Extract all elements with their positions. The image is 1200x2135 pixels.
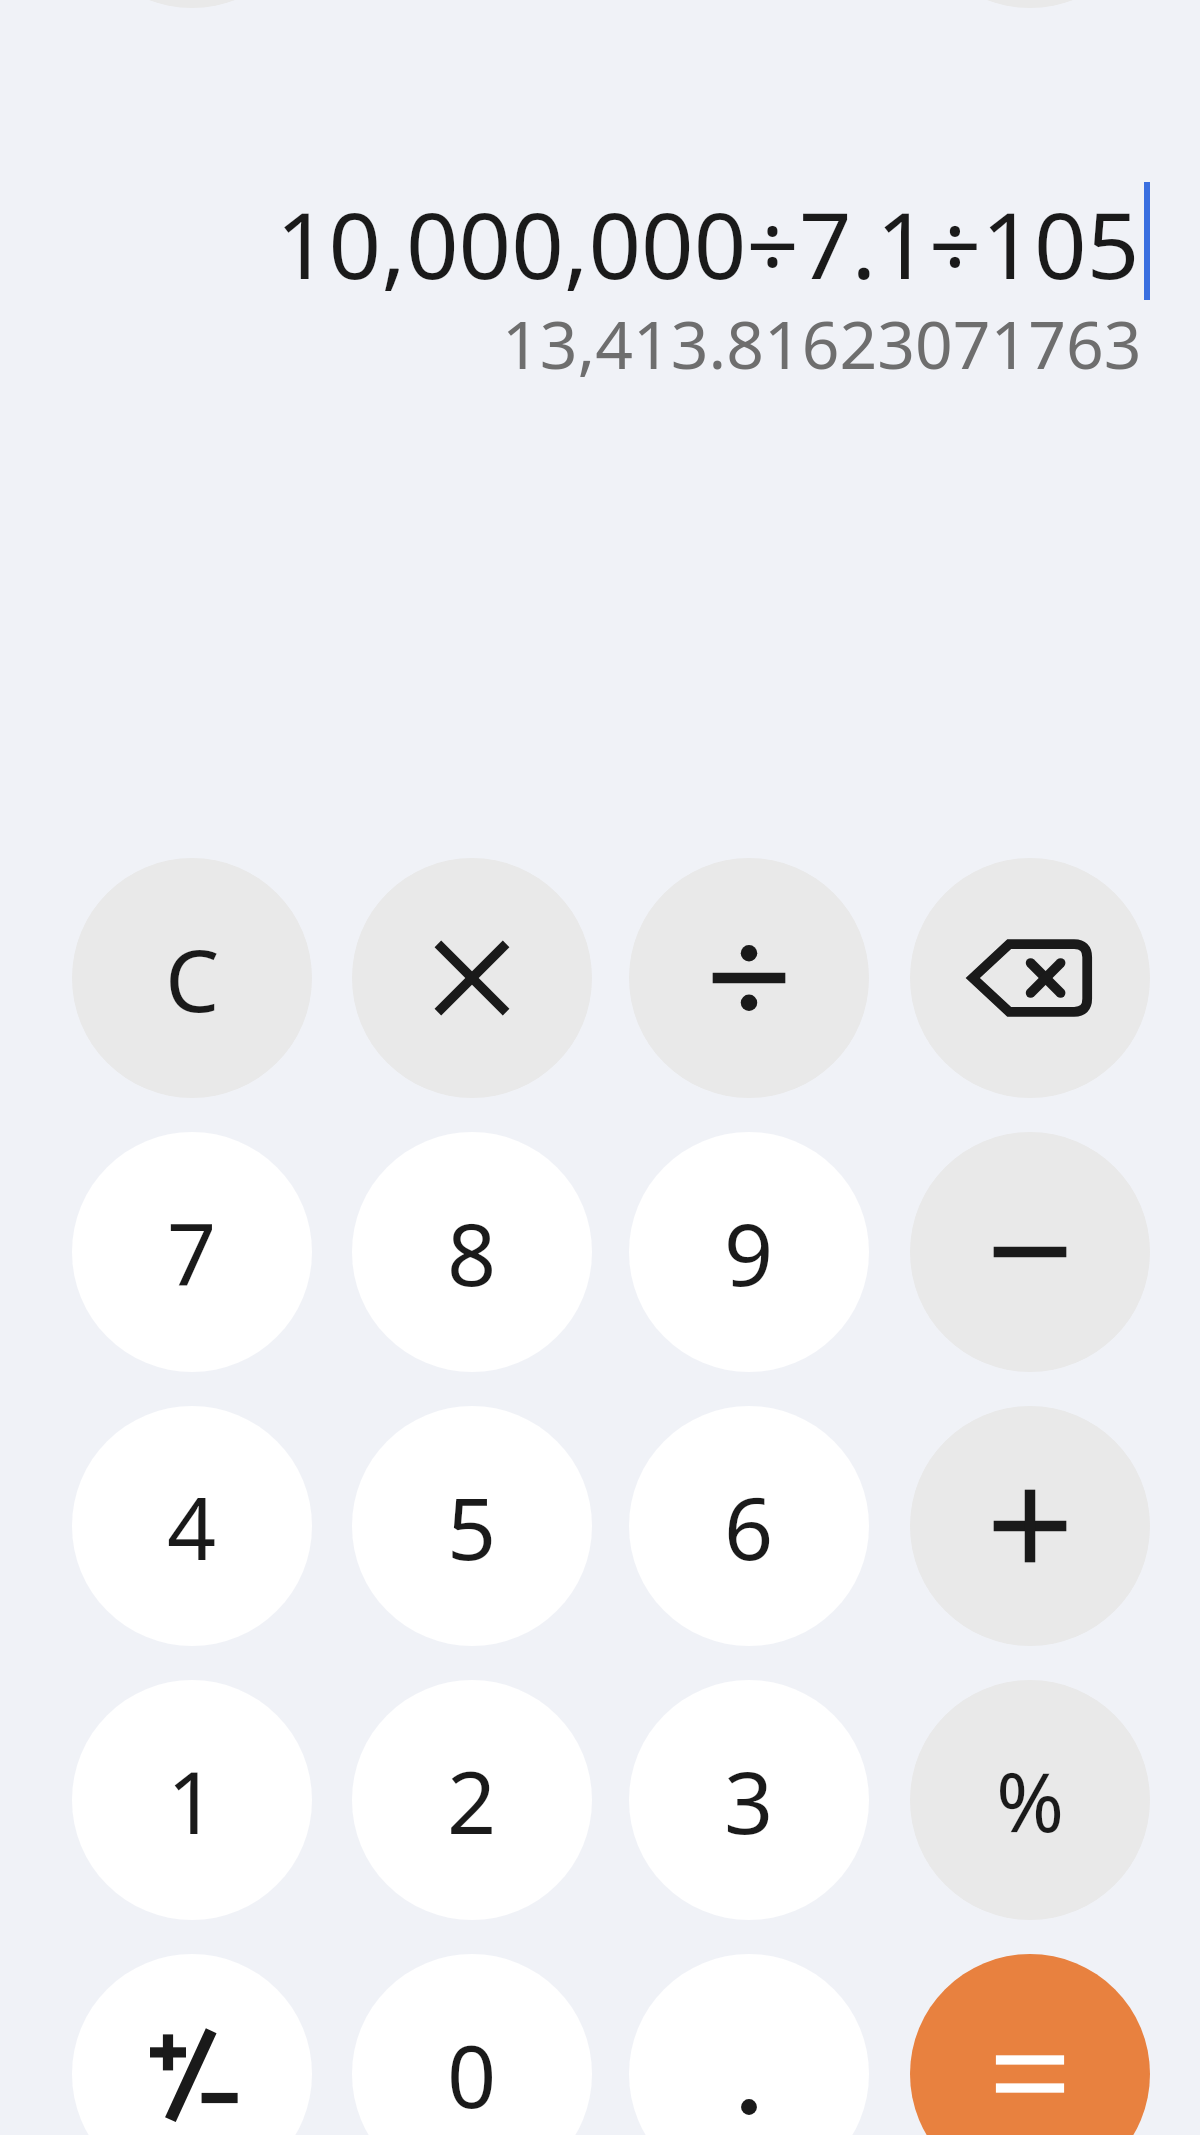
button[interactable]: Minus <box>910 1132 1150 1372</box>
button[interactable]: 0 <box>352 1954 592 2135</box>
button[interactable]: 2 <box>352 1680 592 1920</box>
button[interactable]: Backspace <box>910 858 1150 1098</box>
button[interactable]: 1 <box>72 1680 312 1920</box>
button[interactable] <box>72 0 312 8</box>
button[interactable]: 3 <box>629 1680 869 1920</box>
staticText: 10,000,000÷7.1÷105 <box>276 181 1140 306</box>
staticText: 0 <box>447 2016 497 2133</box>
button[interactable]: Multiply <box>352 858 592 1098</box>
button[interactable]: 6 <box>629 1406 869 1646</box>
button[interactable]: 7 <box>72 1132 312 1372</box>
staticText: 1 <box>167 1742 217 1859</box>
staticText: 7 <box>167 1194 217 1311</box>
staticText: 5 <box>447 1468 497 1585</box>
button[interactable]: Percent <box>910 1680 1150 1920</box>
staticText: C <box>165 920 220 1037</box>
button[interactable]: 4 <box>72 1406 312 1646</box>
button[interactable]: 8 <box>352 1132 592 1372</box>
staticText: 3 <box>724 1742 774 1859</box>
button[interactable]: Divide <box>629 858 869 1098</box>
staticText: 2 <box>447 1742 497 1859</box>
staticText: 8 <box>447 1194 497 1311</box>
staticText: 9 <box>724 1194 774 1311</box>
button[interactable]: Plus minus <box>72 1954 312 2135</box>
button[interactable]: 9 <box>629 1132 869 1372</box>
staticText: 13,413.81623071763 <box>502 298 1142 388</box>
button[interactable]: 5 <box>352 1406 592 1646</box>
staticText: 4 <box>167 1468 217 1585</box>
staticText: 6 <box>724 1468 774 1585</box>
button[interactable]: Equals <box>910 1954 1150 2135</box>
button[interactable]: Plus <box>910 1406 1150 1646</box>
button[interactable]: Decimal point <box>629 1954 869 2135</box>
button[interactable]: Clear <box>72 858 312 1098</box>
button[interactable] <box>910 0 1150 8</box>
staticText: % <box>996 1744 1065 1856</box>
